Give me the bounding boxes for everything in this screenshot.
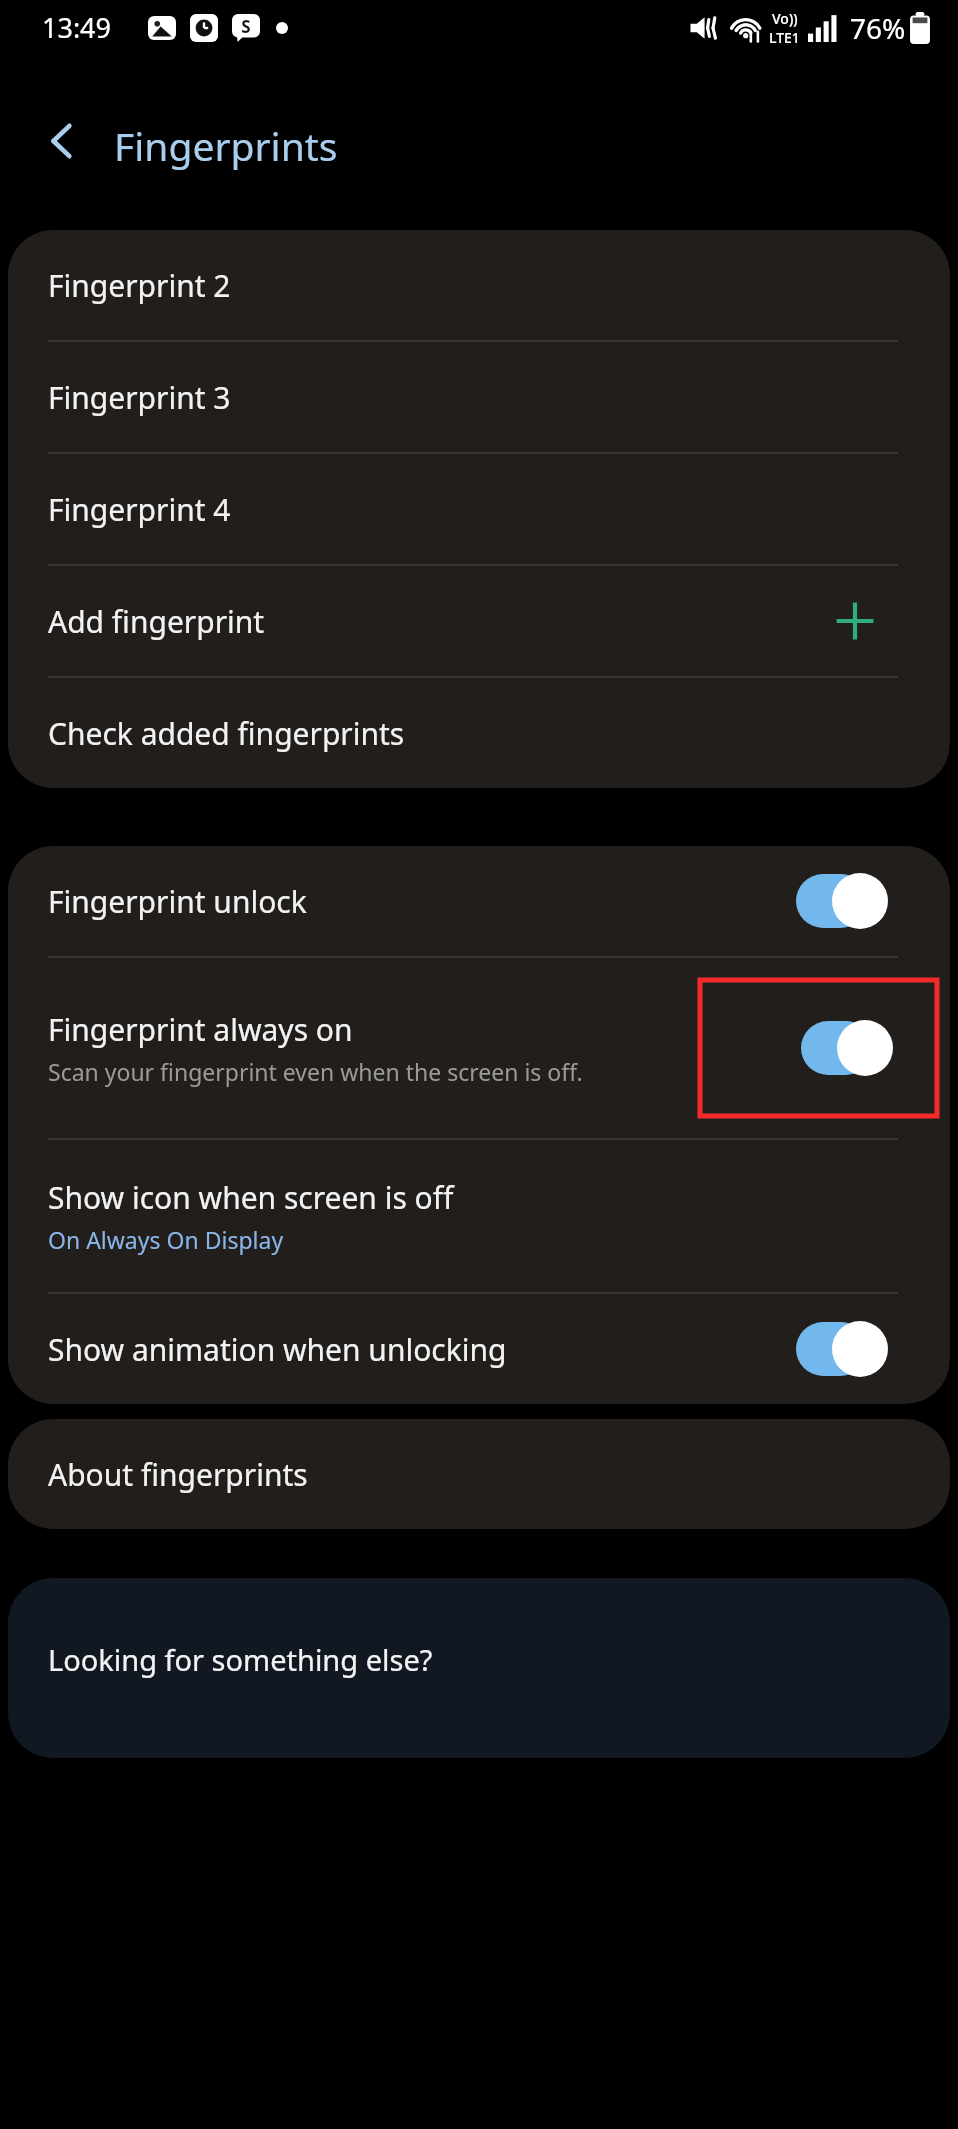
staticText: Scan your fingerprint even when the scre… (48, 1056, 583, 1087)
staticText: Show icon when screen is off (48, 1177, 454, 1218)
staticText: Add fingerprint (48, 601, 832, 642)
button[interactable]: Fingerprint 3 (8, 342, 950, 452)
staticText: Check added fingerprints (48, 713, 405, 754)
staticText: Fingerprint 2 (48, 265, 231, 306)
staticText: On Always On Display (48, 1224, 284, 1255)
button[interactable]: Show animation when unlocking (8, 1294, 950, 1404)
staticText: Fingerprints (114, 119, 338, 172)
staticText: LTE1 (769, 28, 800, 47)
button[interactable]: Check added fingerprints (8, 678, 950, 788)
button[interactable]: Fingerprint 2 (8, 230, 950, 340)
button[interactable]: Fingerprint always on (8, 958, 950, 1138)
button[interactable]: Navigate up (24, 102, 102, 180)
staticText: Looking for something else? (48, 1640, 433, 1679)
button[interactable]: Show icon when screen is off (8, 1140, 950, 1292)
staticText: Fingerprint 4 (48, 489, 231, 530)
staticText: Show animation when unlocking (48, 1329, 796, 1370)
staticText: About fingerprints (48, 1454, 308, 1495)
button[interactable]: About fingerprints (8, 1419, 950, 1529)
button[interactable]: Looking for something else? (8, 1578, 950, 1758)
staticText: 13:49 (42, 9, 112, 46)
staticText: 76% (850, 9, 906, 47)
staticText: Fingerprint always on (48, 1009, 353, 1050)
staticText: Fingerprint unlock (48, 881, 796, 922)
staticText: Vo)) (772, 9, 798, 28)
staticText: S (241, 15, 251, 38)
staticText: Fingerprint 3 (48, 377, 231, 418)
button[interactable]: Add fingerprint (8, 566, 950, 676)
button[interactable]: Fingerprint unlock (8, 846, 950, 956)
button[interactable]: Fingerprint always on toggle (801, 1020, 893, 1076)
button[interactable]: Fingerprint 4 (8, 454, 950, 564)
